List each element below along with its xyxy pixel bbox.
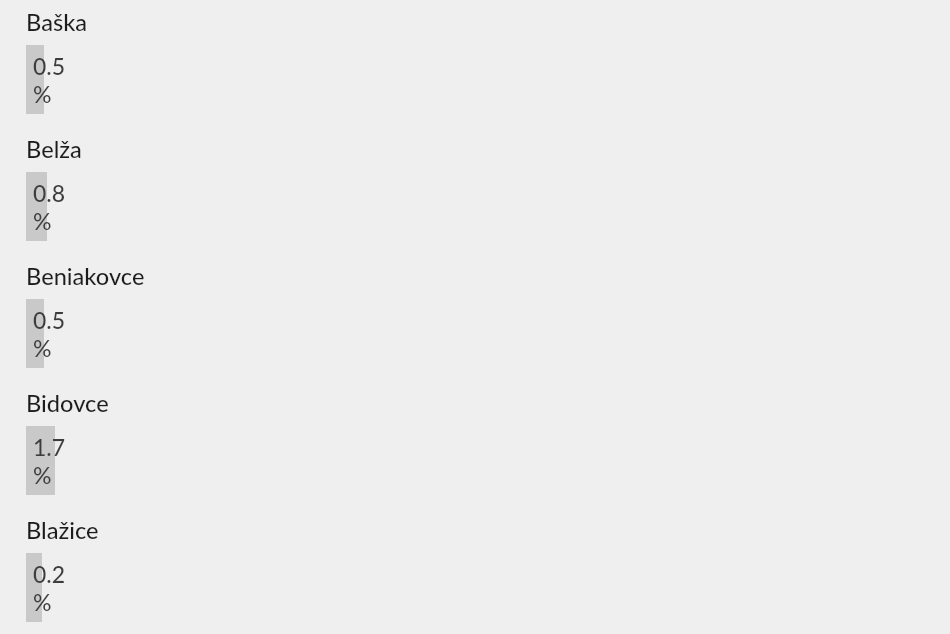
staticText: 0.5 xyxy=(33,306,66,334)
button[interactable]: Blažice xyxy=(0,508,950,634)
staticText: 0.5 xyxy=(33,52,66,80)
button[interactable]: Bidovce xyxy=(0,381,950,508)
staticText: Baška xyxy=(26,8,88,36)
button[interactable]: Baška xyxy=(0,0,950,127)
staticText: Belža xyxy=(26,135,82,163)
staticText: Beniakovce xyxy=(26,262,145,290)
staticText: % xyxy=(33,80,52,108)
staticText: % xyxy=(33,461,52,489)
staticText: 0.8 xyxy=(33,179,66,207)
staticText: % xyxy=(33,207,52,235)
staticText: Blažice xyxy=(26,516,99,544)
staticText: % xyxy=(33,334,52,362)
button[interactable]: Beniakovce xyxy=(0,254,950,381)
staticText: 1.7 xyxy=(33,433,66,461)
staticText: % xyxy=(33,588,52,616)
staticText: 0.2 xyxy=(33,560,66,588)
button[interactable]: Belža xyxy=(0,127,950,254)
staticText: Bidovce xyxy=(26,389,109,417)
